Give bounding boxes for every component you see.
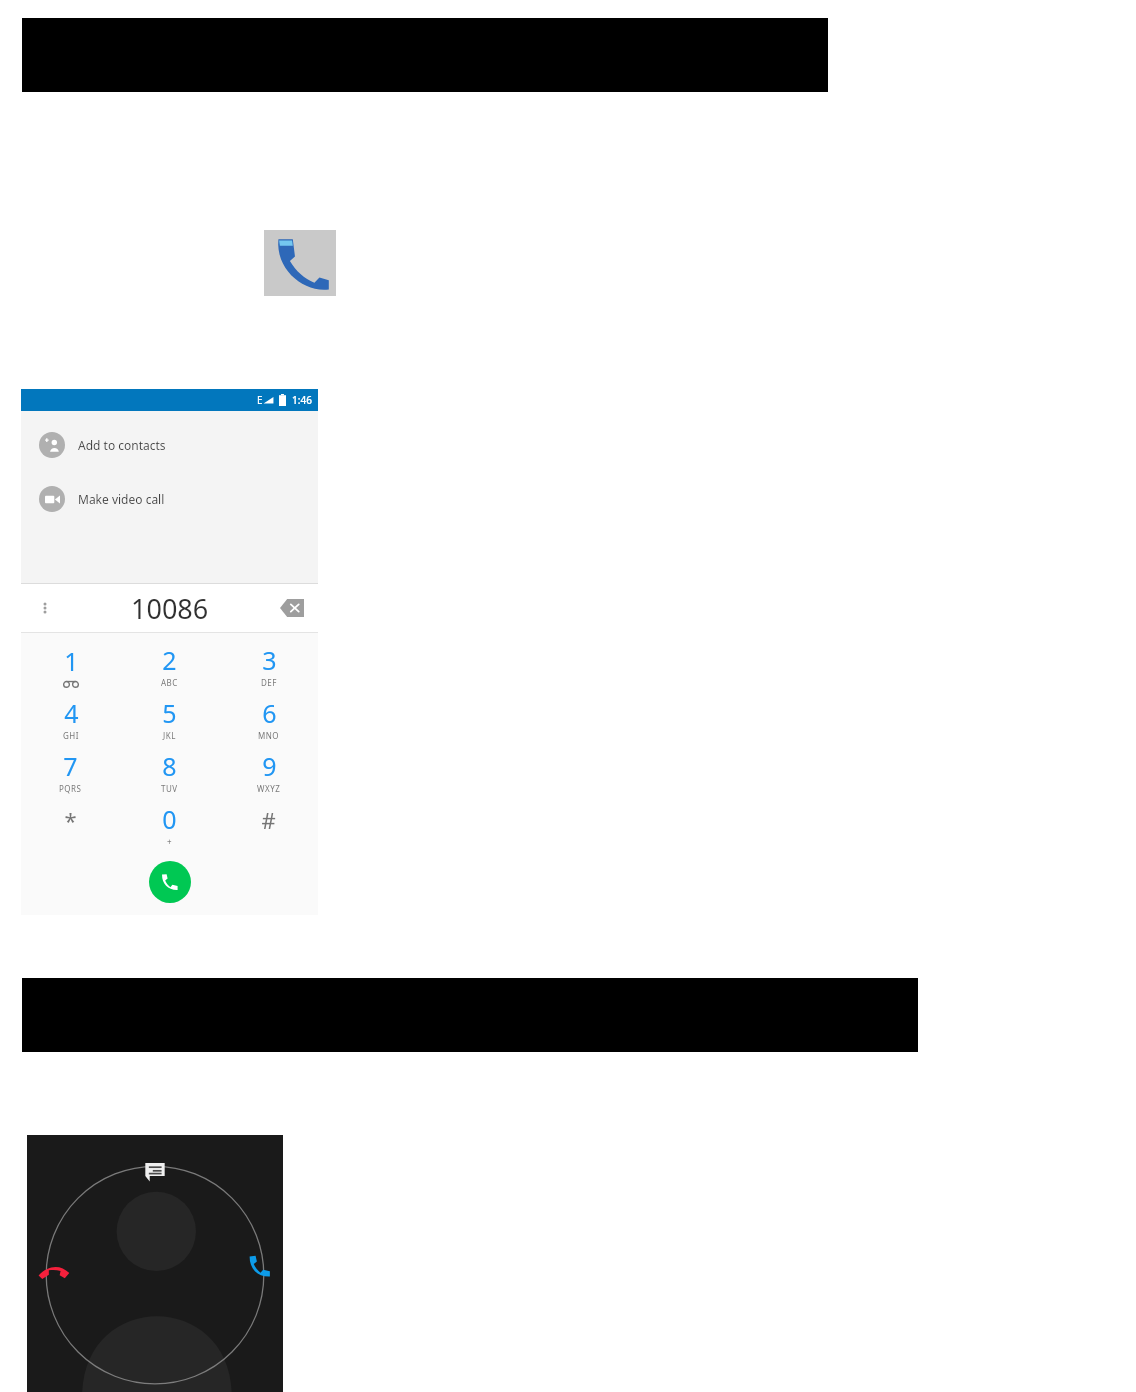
- staticText: +: [167, 836, 173, 847]
- button[interactable]: 0: [120, 798, 219, 851]
- button[interactable]: 2: [120, 639, 219, 692]
- button[interactable]: Make video call: [21, 479, 318, 519]
- staticText: PQRS: [59, 783, 82, 794]
- staticText: JKL: [163, 730, 176, 741]
- button[interactable]: Call: [149, 861, 191, 903]
- button[interactable]: Decline call: [39, 1257, 69, 1283]
- staticText: GHI: [63, 730, 79, 741]
- button[interactable]: 3: [219, 639, 318, 692]
- staticText: 0: [162, 802, 177, 836]
- button[interactable]: #: [219, 798, 318, 851]
- staticText: #: [261, 805, 276, 835]
- button[interactable]: 1: [21, 639, 120, 692]
- staticText: 10086: [131, 590, 209, 627]
- button[interactable]: 4: [21, 692, 120, 745]
- staticText: 4: [64, 696, 79, 730]
- staticText: 1: [64, 644, 79, 678]
- button[interactable]: 5: [120, 692, 219, 745]
- staticText: MNO: [258, 730, 280, 741]
- staticText: *: [64, 805, 77, 835]
- staticText: 6: [262, 696, 277, 730]
- button[interactable]: 6: [219, 692, 318, 745]
- staticText: 8: [162, 749, 177, 783]
- staticText: 3: [262, 643, 277, 677]
- staticText: E: [257, 393, 263, 407]
- staticText: 5: [162, 696, 177, 730]
- staticText: TUV: [161, 783, 178, 794]
- button[interactable]: Add to contacts: [21, 425, 318, 465]
- staticText: DEF: [261, 677, 277, 688]
- staticText: WXYZ: [257, 783, 281, 794]
- button[interactable]: *: [21, 798, 120, 851]
- staticText: Add to contacts: [78, 437, 166, 453]
- staticText: Make video call: [78, 491, 165, 507]
- button[interactable]: 9: [219, 745, 318, 798]
- staticText: 9: [262, 749, 277, 783]
- staticText: 1:46: [292, 393, 312, 407]
- button[interactable]: More options: [35, 598, 55, 618]
- button[interactable]: Answer call: [247, 1253, 273, 1279]
- button[interactable]: 7: [21, 745, 120, 798]
- staticText: ABC: [161, 677, 178, 688]
- button[interactable]: 8: [120, 745, 219, 798]
- staticText: 2: [162, 643, 177, 677]
- button[interactable]: Reply with message: [144, 1162, 166, 1182]
- button[interactable]: Delete: [280, 599, 304, 617]
- button[interactable]: Phone app: [264, 230, 336, 296]
- staticText: 7: [63, 749, 78, 783]
